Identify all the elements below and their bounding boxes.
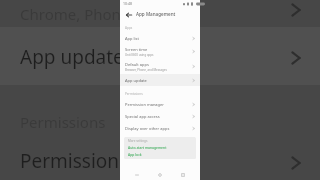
button[interactable]: App list (120, 32, 200, 44)
button[interactable]: Permission manager (120, 98, 200, 110)
button[interactable]: Special app access (120, 110, 200, 122)
staticText: Permissions (125, 92, 143, 96)
button[interactable]: Default apps (120, 59, 200, 74)
staticText: More settings (128, 139, 148, 143)
staticText: Default apps (125, 62, 149, 67)
staticText: Apps (125, 26, 133, 30)
button[interactable]: Permission man (0, 143, 320, 179)
button[interactable]: Display over other apps (120, 122, 200, 134)
staticText: Screen time (125, 47, 148, 52)
button[interactable]: Back (131, 169, 143, 180)
staticText: Until 8:00 using apps (125, 53, 154, 57)
staticText: Special app access (125, 114, 160, 119)
staticText: Chrome, Phone, and (20, 4, 165, 24)
staticText: Permission manager (125, 102, 164, 107)
staticText: Auto-start management (128, 145, 167, 150)
staticText: App update (20, 44, 124, 70)
button[interactable]: Screen time (120, 44, 200, 59)
staticText: App update (125, 78, 147, 83)
button[interactable]: Back (124, 10, 133, 19)
staticText: Permission man (20, 148, 165, 174)
button[interactable]: More settings (124, 137, 196, 159)
button[interactable]: Chrome, Phone, and (0, 2, 320, 26)
button[interactable]: Recents (177, 169, 189, 180)
staticText: Browser, Phone, and Messages (125, 68, 167, 72)
button[interactable]: Home (154, 169, 166, 180)
staticText: App lock (128, 152, 142, 157)
button[interactable]: App update (0, 32, 320, 82)
staticText: Permissions (20, 112, 106, 132)
staticText: Display over other apps (125, 126, 170, 131)
staticText: App Management (136, 11, 176, 17)
staticText: App list (125, 36, 139, 41)
staticText: 10:48 (123, 1, 132, 6)
button[interactable]: App update (120, 74, 200, 86)
